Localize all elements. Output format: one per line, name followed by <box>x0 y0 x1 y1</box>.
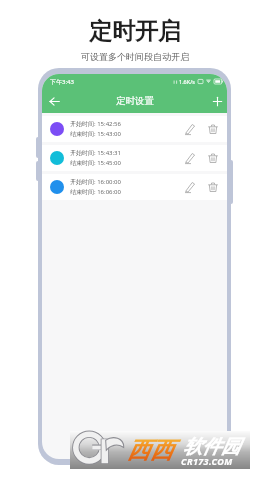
button[interactable]: Edit <box>180 119 200 139</box>
button[interactable]: 开始时间: 16:00:00 <box>42 174 227 200</box>
staticText: 软件园 <box>183 435 240 459</box>
button[interactable]: 开始时间: 15:43:31 <box>42 145 227 171</box>
button[interactable]: Add <box>207 91 227 111</box>
button[interactable]: Edit <box>180 177 200 197</box>
staticText: 可设置多个时间段自动开启 <box>81 51 189 62</box>
staticText: 定时开启 <box>89 17 181 46</box>
button[interactable]: Delete <box>203 148 223 168</box>
button[interactable]: Delete <box>203 119 223 139</box>
staticText: 结束时间: 15:43:00 <box>70 130 121 138</box>
button[interactable]: Back <box>44 91 64 111</box>
button[interactable]: Edit <box>180 148 200 168</box>
staticText: 开始时间: 15:43:31 <box>70 149 121 157</box>
staticText: 西西 <box>127 436 173 465</box>
staticText: CR173.COM <box>181 455 233 467</box>
staticText: 定时设置 <box>116 95 154 107</box>
staticText: 下午3:43 <box>50 78 74 86</box>
button[interactable]: Delete <box>203 177 223 197</box>
staticText: 开始时间: 16:00:00 <box>70 178 121 186</box>
staticText: 开始时间: 15:42:56 <box>70 120 121 128</box>
staticText: 结束时间: 16:06:00 <box>70 188 121 196</box>
staticText: 结束时间: 15:45:00 <box>70 159 121 167</box>
button[interactable]: 开始时间: 15:42:56 <box>42 116 227 142</box>
staticText: 1.6K/s <box>179 78 195 85</box>
